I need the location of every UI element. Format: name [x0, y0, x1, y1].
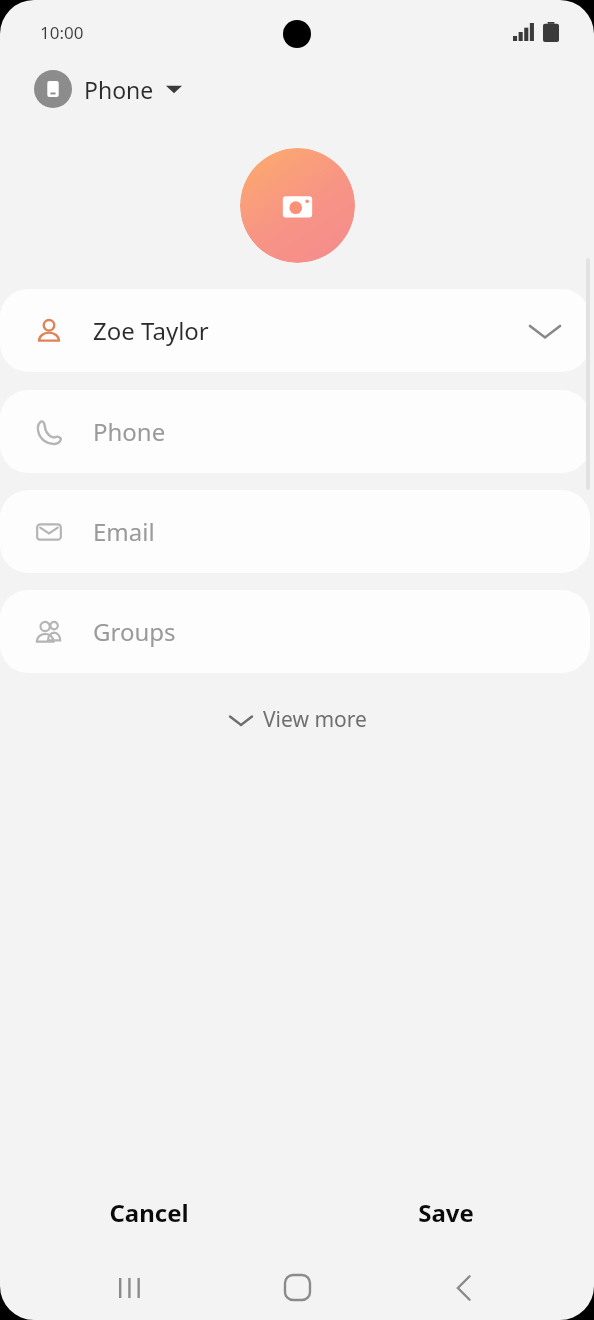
- button[interactable]: Home: [263, 1255, 331, 1320]
- staticText: Cancel: [109, 1196, 189, 1229]
- staticText: Phone: [84, 74, 154, 105]
- button[interactable]: Save: [297, 1183, 594, 1241]
- staticText: Groups: [93, 615, 176, 648]
- staticText: Zoe Taylor: [93, 314, 209, 347]
- staticText: Email: [93, 515, 155, 548]
- button[interactable]: Groups: [0, 590, 590, 673]
- button[interactable]: View more: [222, 699, 375, 740]
- staticText: Save: [418, 1196, 474, 1229]
- button[interactable]: Email: [0, 490, 590, 573]
- button[interactable]: Phone: [30, 66, 186, 112]
- button[interactable]: Cancel: [0, 1183, 297, 1241]
- button[interactable]: Back: [430, 1255, 498, 1320]
- staticText: View more: [263, 705, 367, 734]
- button[interactable]: Change photo: [240, 148, 355, 263]
- staticText: Phone: [93, 415, 166, 448]
- button[interactable]: Recent apps: [97, 1255, 165, 1320]
- button[interactable]: Zoe Taylor: [0, 289, 590, 372]
- staticText: 10:00: [40, 21, 84, 44]
- button[interactable]: Phone: [0, 390, 590, 473]
